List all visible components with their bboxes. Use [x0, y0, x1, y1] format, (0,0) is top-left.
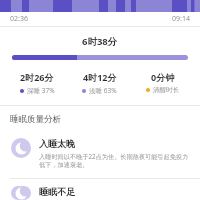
staticText: 睡眠质量分析 [10, 114, 61, 125]
button[interactable]: 睡眠不足 [0, 186, 200, 200]
button[interactable]: 4时12分 [68, 70, 131, 96]
button[interactable]: Sleep ratio [12, 55, 188, 60]
staticText: 浅睡 63% [89, 86, 117, 95]
staticText: 低下，加速衰老。 [39, 161, 89, 169]
staticText: 4时12分 [83, 71, 117, 83]
staticText: 深睡 37% [27, 86, 55, 95]
staticText: 0分钟 [151, 71, 175, 83]
staticText: 入睡太晚 [39, 138, 75, 149]
staticText: 6时38分 [82, 35, 118, 48]
staticText: 02:36 [10, 14, 28, 24]
staticText: 2时26分 [20, 71, 54, 83]
staticText: 09:14 [172, 14, 190, 24]
button[interactable]: Sleep stages chart [0, 0, 200, 12]
button[interactable]: 0分钟 [131, 70, 194, 95]
staticText: 入睡时间以不晚于22点为佳。长期熬夜可能引起免疫力 [39, 152, 189, 160]
button[interactable]: 2时26分 [6, 70, 68, 96]
staticText: 睡眠不足 [39, 186, 75, 197]
staticText: 清醒时长 [153, 86, 179, 94]
button[interactable]: 入睡太晚 [0, 138, 200, 169]
